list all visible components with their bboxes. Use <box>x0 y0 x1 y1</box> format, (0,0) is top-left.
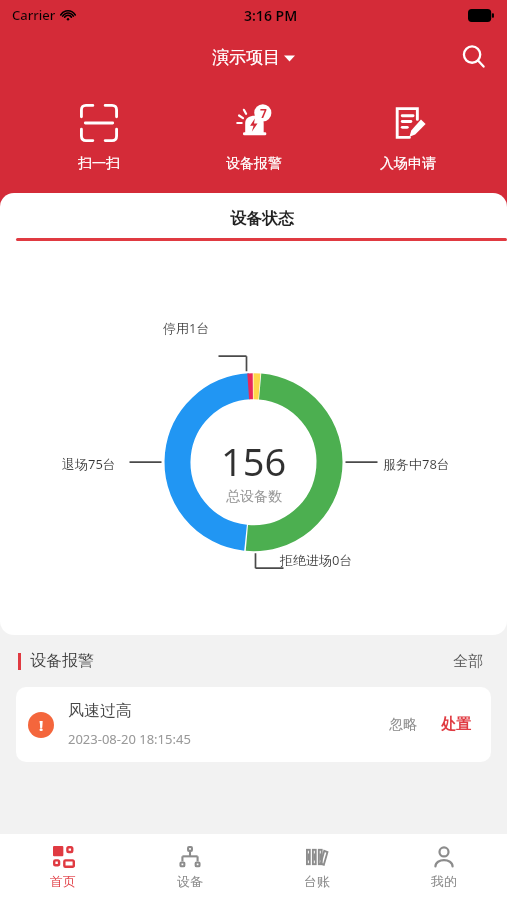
button[interactable]: 我的 <box>380 834 507 900</box>
button[interactable]: 设备 <box>126 834 253 900</box>
staticText: 台账 <box>304 873 330 889</box>
staticText: 风速过高 <box>68 701 132 721</box>
staticText: 设备报警 <box>226 155 282 173</box>
button[interactable]: 首页 <box>0 834 126 900</box>
staticText: 服务中78台 <box>383 455 450 473</box>
staticText: 156 <box>221 435 287 487</box>
staticText: Carrier <box>12 6 56 24</box>
staticText: ! <box>39 715 44 735</box>
staticText: 我的 <box>431 873 457 889</box>
button[interactable]: ! <box>16 687 491 762</box>
button[interactable]: 扫一扫 <box>43 96 155 177</box>
staticText: 演示项目 <box>212 47 280 68</box>
button[interactable]: 全部 <box>447 646 489 677</box>
staticText: 3:16 PM <box>244 6 298 25</box>
button[interactable]: Search <box>451 34 497 80</box>
staticText: 总设备数 <box>226 488 282 506</box>
button[interactable]: 设备状态 <box>16 209 507 241</box>
staticText: 2023-08-20 18:15:45 <box>68 730 191 748</box>
staticText: 首页 <box>50 873 76 889</box>
staticText: 7 <box>260 105 267 121</box>
staticText: 退场75台 <box>62 455 116 473</box>
staticText: 设备状态 <box>230 209 294 229</box>
button[interactable]: 入场申请 <box>352 96 464 177</box>
staticText: 全部 <box>453 652 483 671</box>
button[interactable]: 忽略 <box>381 710 425 740</box>
staticText: 扫一扫 <box>78 155 120 173</box>
staticText: 拒绝进场0台 <box>280 551 353 569</box>
button[interactable]: 演示项目 <box>202 39 305 76</box>
staticText: 设备 <box>177 873 203 889</box>
staticText: 处置 <box>441 715 471 734</box>
button[interactable]: 处置 <box>435 709 477 740</box>
staticText: 停用1台 <box>163 319 210 337</box>
staticText: 设备报警 <box>30 651 94 671</box>
button[interactable]: 台账 <box>253 834 380 900</box>
staticText: 忽略 <box>389 716 417 734</box>
button[interactable]: 7 <box>198 96 310 177</box>
staticText: 入场申请 <box>380 155 436 173</box>
